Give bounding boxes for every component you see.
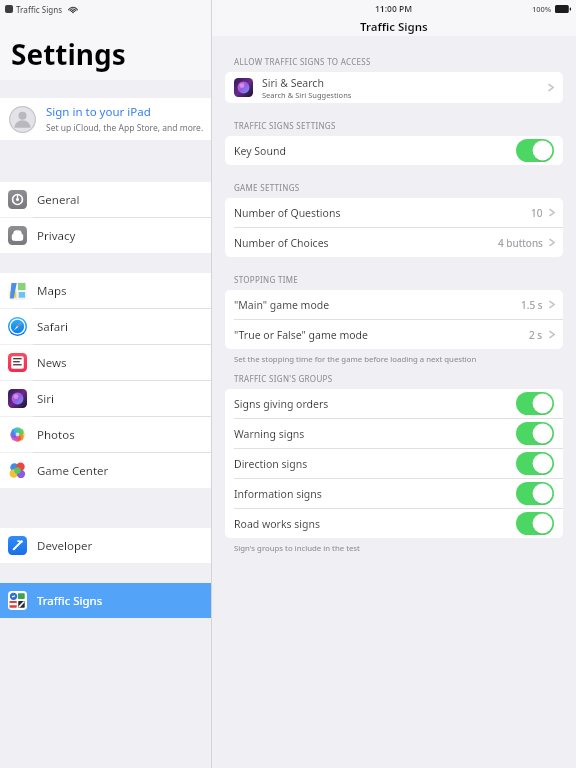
button[interactable]: "True or False" game mode: [225, 320, 563, 349]
button[interactable]: Privacy: [0, 218, 211, 253]
button[interactable]: Number of Questions: [225, 198, 563, 227]
button[interactable]: Developer: [0, 528, 211, 563]
button[interactable]: Key Sound: [225, 136, 563, 165]
staticText: Traffic Signs: [37, 593, 103, 609]
staticText: Developer: [37, 538, 93, 554]
staticText: Siri & Search: [262, 76, 324, 90]
staticText: Number of Choices: [234, 236, 498, 250]
staticText: Set up iCloud, the App Store, and more.: [46, 122, 204, 134]
staticText: General: [37, 192, 80, 208]
button[interactable]: Toggle on: [516, 392, 554, 415]
staticText: 1.5 s: [521, 298, 543, 312]
button[interactable]: Siri: [0, 381, 211, 416]
staticText: News: [37, 355, 67, 371]
staticText: "True or False" game mode: [234, 328, 529, 342]
staticText: Direction signs: [234, 457, 516, 471]
button[interactable]: Warning signs: [225, 419, 563, 448]
button[interactable]: Sign in to your iPad: [0, 98, 211, 140]
staticText: Maps: [37, 283, 67, 299]
staticText: Traffic Signs: [360, 19, 428, 35]
staticText: ALLOW TRAFFIC SIGNS TO ACCESS: [234, 56, 371, 67]
staticText: Number of Questions: [234, 206, 531, 220]
button[interactable]: News: [0, 345, 211, 380]
staticText: Settings: [11, 35, 126, 73]
staticText: Traffic Signs: [16, 4, 63, 15]
button[interactable]: "Main" game mode: [225, 290, 563, 319]
staticText: Sign's groups to include in the test: [234, 543, 360, 554]
staticText: Safari: [37, 319, 68, 335]
staticText: 4 buttons: [498, 236, 543, 250]
staticText: Set the stopping time for the game befor…: [234, 354, 477, 365]
staticText: Siri: [37, 391, 54, 407]
staticText: Signs giving orders: [234, 397, 516, 411]
button[interactable]: Direction signs: [225, 449, 563, 478]
staticText: 100%: [532, 4, 552, 14]
button[interactable]: Game Center: [0, 453, 211, 488]
button[interactable]: Toggle on: [516, 452, 554, 475]
button[interactable]: Signs giving orders: [225, 389, 563, 418]
staticText: 2 s: [529, 328, 543, 342]
staticText: GAME SETTINGS: [234, 182, 300, 193]
staticText: "Main" game mode: [234, 298, 521, 312]
button[interactable]: Photos: [0, 417, 211, 452]
button[interactable]: Traffic Signs: [0, 583, 211, 618]
staticText: Privacy: [37, 228, 76, 244]
staticText: Warning signs: [234, 427, 516, 441]
button[interactable]: Road works signs: [225, 509, 563, 538]
staticText: Road works signs: [234, 517, 516, 531]
button[interactable]: Number of Choices: [225, 228, 563, 257]
button[interactable]: General: [0, 182, 211, 217]
staticText: 10: [531, 206, 543, 220]
staticText: Information signs: [234, 487, 516, 501]
staticText: TRAFFIC SIGNS SETTINGS: [234, 120, 336, 131]
button[interactable]: Toggle on: [516, 482, 554, 505]
staticText: Game Center: [37, 463, 109, 479]
button[interactable]: Toggle on: [516, 139, 554, 162]
staticText: TRAFFIC SIGN'S GROUPS: [234, 373, 333, 384]
staticText: Photos: [37, 427, 75, 443]
button[interactable]: Toggle on: [516, 422, 554, 445]
button[interactable]: Toggle on: [516, 512, 554, 535]
staticText: Search & Siri Suggestions: [262, 90, 352, 100]
button[interactable]: Information signs: [225, 479, 563, 508]
button[interactable]: Siri & Search: [225, 72, 563, 103]
staticText: 11:00 PM: [375, 3, 413, 15]
staticText: STOPPING TIME: [234, 274, 299, 285]
staticText: Key Sound: [234, 144, 516, 158]
button[interactable]: Maps: [0, 273, 211, 308]
button[interactable]: Safari: [0, 309, 211, 344]
staticText: Sign in to your iPad: [46, 104, 151, 120]
